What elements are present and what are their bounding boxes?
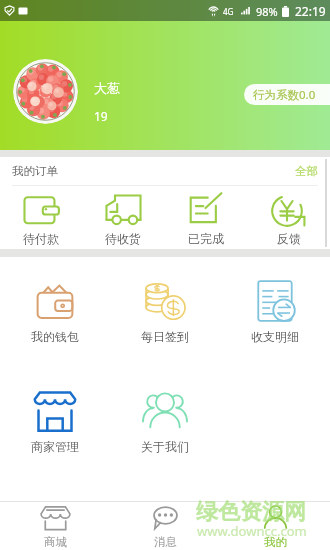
staticText: 关于我们 <box>141 439 189 454</box>
button[interactable]: 商城 <box>0 502 110 550</box>
staticText: 22:19 <box>295 3 326 19</box>
staticText: 商城 <box>44 535 67 549</box>
button[interactable]: 我的 <box>220 502 330 550</box>
button[interactable]: 每日签到 <box>110 279 220 369</box>
staticText: 消息 <box>154 535 177 549</box>
button[interactable]: 行为系数0.0 <box>244 84 330 105</box>
button[interactable]: 关于我们 <box>110 389 220 479</box>
staticText: 4G <box>223 6 234 17</box>
staticText: 行为系数0.0 <box>253 87 316 103</box>
staticText: 19 <box>94 108 108 124</box>
staticText: 待付款 <box>23 231 59 246</box>
button[interactable]: 我的订单 <box>0 157 330 185</box>
staticText: 已完成 <box>188 231 224 246</box>
staticText: 待收货 <box>105 231 141 246</box>
button[interactable]: Profile photo <box>13 59 78 124</box>
staticText: 绿色资源网 <box>196 498 306 526</box>
staticText: 98% <box>256 4 278 19</box>
staticText: 商家管理 <box>31 439 79 454</box>
button[interactable]: 消息 <box>110 502 220 550</box>
staticText: 我的钱包 <box>31 329 79 344</box>
button[interactable]: 收支明细 <box>220 279 330 369</box>
staticText: 我的订单 <box>12 164 58 178</box>
staticText: www.downcc.com <box>197 522 307 540</box>
button[interactable]: 待收货 <box>82 186 164 249</box>
button[interactable]: 已完成 <box>164 186 247 249</box>
button[interactable]: 商家管理 <box>0 389 110 479</box>
button[interactable]: 我的钱包 <box>0 279 110 369</box>
staticText: 大葱 <box>94 80 120 96</box>
button[interactable]: 反馈 <box>247 186 330 249</box>
staticText: 我的 <box>264 535 287 549</box>
staticText: 每日签到 <box>141 329 189 344</box>
button[interactable]: 待付款 <box>0 186 82 249</box>
staticText: 全部 <box>295 164 318 178</box>
staticText: 反馈 <box>277 231 301 246</box>
staticText: 收支明细 <box>251 329 299 344</box>
